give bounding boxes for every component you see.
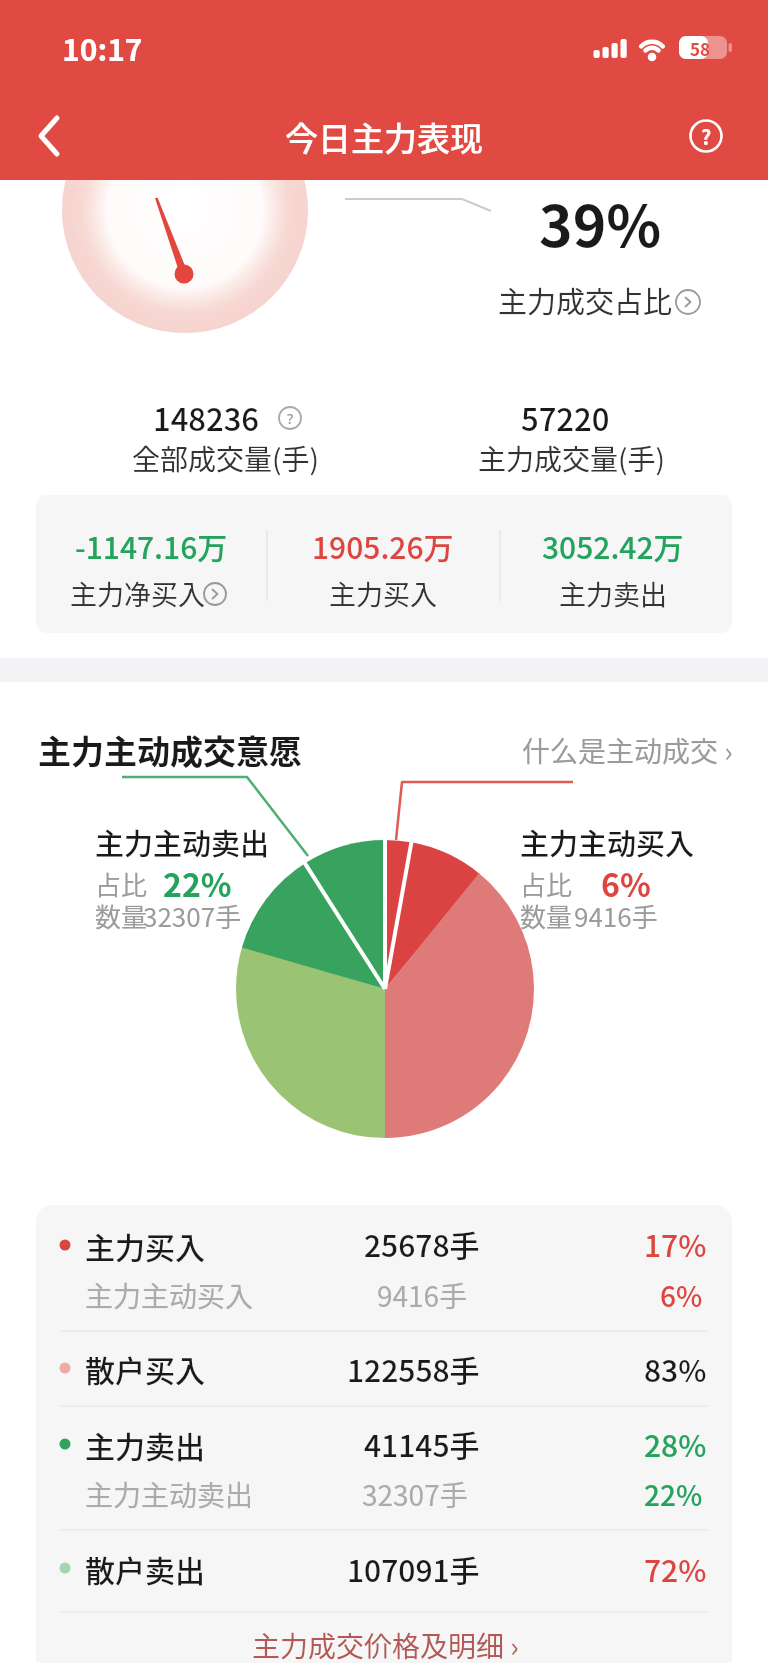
staticText: 什么是主动成交 › <box>522 730 733 771</box>
staticText: 全部成交量(手) <box>132 438 319 479</box>
staticText: 主力成交占比 <box>498 279 673 321</box>
staticText: 占比 <box>520 865 573 903</box>
button[interactable] <box>678 106 734 166</box>
staticText: 83% <box>644 1347 707 1390</box>
staticText: 122558手 <box>347 1347 480 1390</box>
staticText: 41145手 <box>364 1422 480 1465</box>
staticText: 25678手 <box>364 1222 480 1265</box>
staticText: 主力买入 <box>85 1224 205 1267</box>
staticText: 主力主动卖出 <box>95 821 270 863</box>
staticText: 主力买入 <box>329 574 437 613</box>
staticText: 9416手 <box>574 897 658 935</box>
staticText: 主力卖出 <box>559 574 667 613</box>
staticText: 72% <box>644 1547 707 1590</box>
staticText: 22% <box>163 860 232 906</box>
button[interactable] <box>24 106 80 166</box>
staticText: 数量 <box>95 897 148 935</box>
staticText: 1905.26万 <box>312 524 454 567</box>
staticText: ? <box>287 409 294 428</box>
staticText: 散户卖出 <box>85 1547 205 1590</box>
staticText: ? <box>701 122 712 151</box>
staticText: 28% <box>644 1422 707 1465</box>
staticText: 散户买入 <box>85 1347 205 1390</box>
button[interactable]: 什么是主动成交 › <box>213 718 733 782</box>
staticText: 107091手 <box>347 1547 480 1590</box>
staticText: 32307手 <box>143 897 242 935</box>
staticText: 6% <box>660 1275 703 1316</box>
staticText: 17% <box>644 1222 707 1265</box>
button[interactable]: 主力成交价格及明细 › <box>125 1613 645 1663</box>
staticText: 数量 <box>520 897 573 935</box>
staticText: 10:17 <box>62 26 143 69</box>
staticText: 32307手 <box>362 1474 468 1515</box>
staticText: 39% <box>539 181 662 264</box>
staticText: 今日主力表现 <box>285 113 483 161</box>
staticText: 主力主动成交意愿 <box>38 726 302 774</box>
staticText: 148236 <box>153 395 260 440</box>
staticText: 占比 <box>95 865 148 903</box>
staticText: 6% <box>601 860 651 906</box>
staticText: 主力主动买入 <box>85 1275 254 1316</box>
staticText: -1147.16万 <box>75 524 228 567</box>
staticText: 主力成交量(手) <box>478 438 665 479</box>
staticText: 9416手 <box>377 1275 468 1316</box>
staticText: 主力卖出 <box>85 1423 205 1466</box>
staticText: 主力净买入 <box>70 574 205 613</box>
staticText: 58 <box>690 36 711 61</box>
staticText: 57220 <box>521 395 610 440</box>
staticText: 主力主动卖出 <box>85 1474 254 1515</box>
staticText: 22% <box>644 1474 703 1515</box>
staticText: 主力成交价格及明细 › <box>252 1625 519 1663</box>
staticText: 主力主动买入 <box>520 821 695 863</box>
staticText: 3052.42万 <box>542 524 684 567</box>
